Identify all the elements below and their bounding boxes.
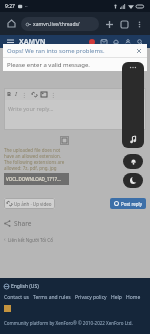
button[interactable]: Dismiss — [135, 47, 143, 55]
button[interactable]: ‹ — [4, 236, 146, 243]
button[interactable] — [87, 37, 97, 47]
button[interactable]: New tab — [103, 18, 115, 30]
button[interactable]: Terms and rules — [33, 294, 71, 301]
button[interactable]: Tabs — [118, 18, 130, 30]
staticText: ⋮ — [50, 91, 56, 98]
button[interactable]: English (US) — [4, 283, 39, 290]
button[interactable]: I — [15, 90, 17, 98]
button[interactable]: Share — [4, 219, 146, 228]
staticText: Please enter a valid message. — [7, 61, 90, 69]
button[interactable]: Music — [122, 62, 144, 148]
button[interactable]: Insert link — [30, 90, 38, 98]
button[interactable]: Contact us — [4, 294, 29, 301]
staticText: ⋮ — [21, 91, 27, 98]
staticText: Post reply — [121, 201, 142, 207]
button[interactable]: Menu — [5, 37, 15, 47]
staticText: Up ảnh · Up video — [14, 201, 52, 207]
staticText: Community platform by XenForo® © 2010-20… — [4, 320, 133, 326]
button[interactable]: Home — [5, 17, 18, 30]
staticText: VOCL.DOWNLOAD_1717... — [6, 176, 61, 182]
button[interactable]: More options — [133, 18, 145, 30]
button[interactable]: Write your reply... — [4, 100, 146, 130]
staticText: XAMVN — [19, 37, 46, 47]
staticText: The uploaded file does not have an allow… — [4, 147, 69, 171]
staticText: Share — [14, 219, 32, 228]
button[interactable]: Alerts — [111, 37, 121, 47]
button[interactable]: Messages — [99, 37, 109, 47]
button[interactable]: B — [7, 90, 11, 98]
button[interactable]: Post reply — [114, 198, 142, 209]
staticText: 9:27 — [5, 3, 15, 10]
staticText: Oops! We ran into some problems. — [7, 47, 105, 55]
staticText: ·· — [25, 3, 28, 10]
button[interactable]: Night mode — [123, 173, 143, 188]
button[interactable]: Privacy policy — [75, 294, 107, 301]
staticText: Liên kết Người Tối Cổ — [8, 237, 53, 243]
staticText: ‹ — [4, 236, 6, 243]
other: Music — [128, 134, 138, 144]
button[interactable]: Home — [126, 294, 141, 301]
button[interactable]: Insert image — [40, 90, 48, 98]
staticText: Write your reply... — [8, 105, 54, 112]
staticText: English (US) — [11, 283, 39, 290]
staticText: xamvn.live/threads/82243/#p — [33, 21, 94, 28]
button[interactable]: Notifications — [123, 154, 143, 169]
button[interactable]: Help — [111, 294, 122, 301]
button[interactable]: Search — [135, 37, 145, 47]
button[interactable]: Account — [123, 37, 133, 47]
button[interactable]: xamvn.live/threads/82243/#p — [26, 17, 94, 31]
button[interactable]: Up ảnh · Up video — [7, 198, 52, 209]
